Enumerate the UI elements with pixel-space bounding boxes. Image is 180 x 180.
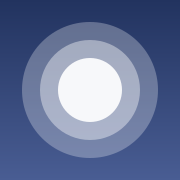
button[interactable]: Record — [22, 22, 158, 158]
